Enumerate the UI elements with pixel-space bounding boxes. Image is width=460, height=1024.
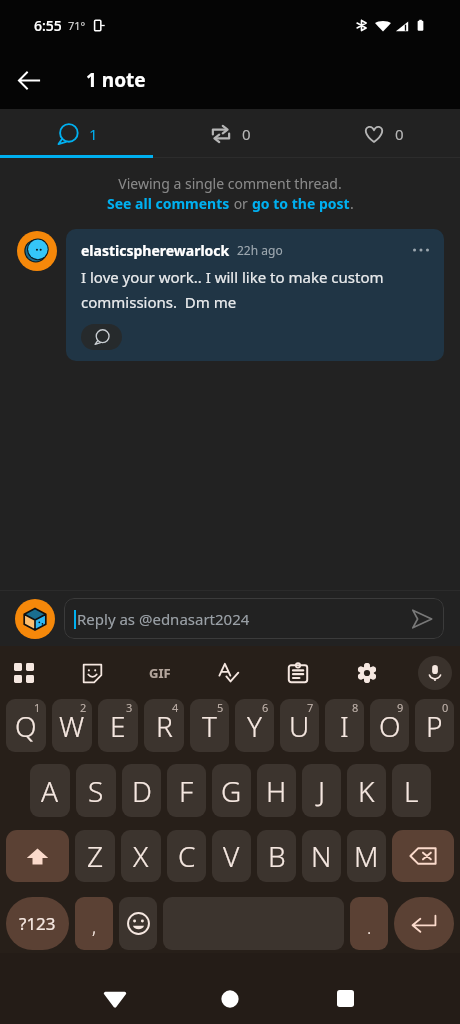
button[interactable]: Back [8,59,50,101]
button[interactable]: Q [6,699,46,752]
staticText: 0 [442,700,449,715]
staticText: U [289,707,310,745]
staticText: B [268,837,286,875]
button[interactable]: A [30,764,70,817]
button[interactable]: E [98,699,138,752]
button[interactable]: Z [75,830,115,882]
button[interactable]: J [302,764,341,817]
staticText: . [350,194,354,213]
button[interactable]: . [350,897,388,950]
staticText: or [230,194,252,213]
button[interactable]: More options [410,239,432,261]
staticText: Y [247,707,262,745]
staticText: ?123 [19,912,56,935]
staticText: 1 [34,700,41,715]
button[interactable]: Recent apps [299,953,391,1024]
staticText: 2 [80,700,87,715]
button[interactable]: T [190,699,229,752]
button[interactable]: Y [235,699,274,752]
button[interactable]: elasticspherewarlock avatar [15,229,58,272]
button[interactable]: Voice input [418,656,452,690]
button[interactable]: Your avatar [15,599,55,639]
staticText: M [354,837,379,875]
button[interactable]: Emoji [119,897,157,950]
button[interactable]: K [347,764,386,817]
staticText: 0 [242,124,251,144]
button[interactable]: 0 [154,109,307,158]
staticText: 71° [68,18,86,33]
button[interactable]: S [76,764,116,817]
staticText: P [426,707,443,745]
button[interactable]: I [325,699,364,752]
staticText: . [367,915,372,940]
staticText: F [179,772,194,810]
button[interactable]: M [347,830,386,882]
staticText: G [221,772,242,810]
staticText: Q [15,707,37,745]
staticText: , [92,915,97,940]
staticText: 4 [172,700,179,715]
button[interactable]: Reply [81,324,122,350]
staticText: elasticspherewarlock [81,241,230,260]
button[interactable]: O [370,699,409,752]
button[interactable]: , [75,897,113,950]
staticText: Z [87,837,104,875]
button[interactable]: Clipboard [280,655,316,691]
staticText: Reply as @ednasart2024 [77,609,250,629]
staticText: 22h ago [237,242,283,258]
button[interactable]: P [415,699,454,752]
button[interactable]: W [52,699,92,752]
button[interactable]: H [257,764,296,817]
button[interactable]: GIF [142,655,178,691]
button[interactable]: See all comments [107,194,230,213]
button[interactable]: R [144,699,184,752]
staticText: I [340,707,349,745]
staticText: S [88,772,104,810]
staticText: O [379,707,401,745]
button[interactable]: G [212,764,251,817]
button[interactable]: Home [184,953,276,1024]
staticText: 6 [262,700,269,715]
staticText: 1 [89,124,98,144]
button[interactable]: N [302,830,341,882]
staticText: W [59,707,85,745]
staticText: X [133,837,149,875]
button[interactable]: B [257,830,296,882]
button[interactable]: Apps [6,655,42,691]
staticText: K [358,772,375,810]
button[interactable]: C [167,830,206,882]
button[interactable]: L [392,764,431,817]
button[interactable]: Enter [394,897,454,950]
button[interactable]: ?123 [6,897,69,950]
staticText: 6:55 [34,16,62,35]
button[interactable]: V [212,830,251,882]
button[interactable]: 1 [0,109,154,158]
button[interactable]: Stickers [74,655,110,691]
staticText: Viewing a single comment thread. [118,174,342,193]
staticText: R [156,707,173,745]
button[interactable]: Reply as @ednasart2024 [64,598,444,639]
button[interactable]: Backspace [392,830,454,882]
button[interactable]: U [280,699,319,752]
button[interactable]: elasticspherewarlock [66,229,444,361]
staticText: GIF [149,664,171,682]
button[interactable]: Send [410,607,434,631]
button[interactable]: F [167,764,206,817]
staticText: 8 [352,700,359,715]
button[interactable]: Translate [211,655,247,691]
staticText: A [41,772,59,810]
staticText: I love your work.. I will like to make c… [81,267,432,312]
button[interactable]: Settings [349,655,385,691]
button[interactable]: Back [69,953,161,1024]
staticText: J [318,772,326,810]
staticText: L [404,772,419,810]
button[interactable]: D [122,764,161,817]
staticText: T [202,707,217,745]
staticText: H [266,772,287,810]
button[interactable]: X [121,830,161,882]
button[interactable]: 0 [307,109,460,158]
button[interactable]: Shift [6,830,69,882]
staticText: E [110,707,126,745]
button[interactable]: go to the post [252,194,350,213]
